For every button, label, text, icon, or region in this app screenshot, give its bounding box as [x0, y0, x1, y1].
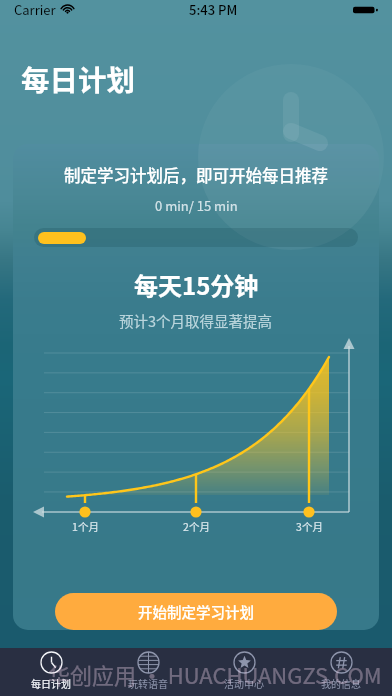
button[interactable]: 玩转语音: [103, 648, 193, 696]
staticText: 我的信息: [321, 676, 361, 690]
other: 每日计划: [40, 651, 63, 674]
staticText: 每日计划: [21, 58, 136, 99]
button[interactable]: 每日计划: [6, 648, 96, 696]
staticText: 预计3个月取得显著提高: [119, 310, 273, 331]
staticText: 3个月: [296, 519, 323, 534]
staticText: 1个月: [72, 519, 99, 534]
staticText: 制定学习计划后，即可开始每日推荐: [64, 163, 328, 187]
button[interactable]: 我的信息: [296, 648, 386, 696]
button[interactable]: 活动中心: [199, 648, 289, 696]
staticText: 每天15分钟: [134, 267, 259, 302]
staticText: 玩转语音: [128, 676, 168, 690]
other: 我的信息: [330, 651, 353, 674]
staticText: 活动中心: [224, 676, 264, 690]
staticText: 5:43 PM: [189, 0, 238, 19]
staticText: 2个月: [183, 519, 210, 534]
other: 玩转语音: [137, 651, 160, 674]
staticText: Carrier: [14, 0, 56, 19]
staticText: 每日计划: [31, 676, 71, 690]
other: 活动中心: [233, 651, 256, 674]
button[interactable]: 开始制定学习计划: [55, 593, 337, 630]
staticText: 0 min/ 15 min: [155, 196, 238, 215]
staticText: 开始制定学习计划: [138, 601, 254, 622]
staticText: 华创应用 · HUACHUANGZS.COM: [48, 658, 382, 690]
